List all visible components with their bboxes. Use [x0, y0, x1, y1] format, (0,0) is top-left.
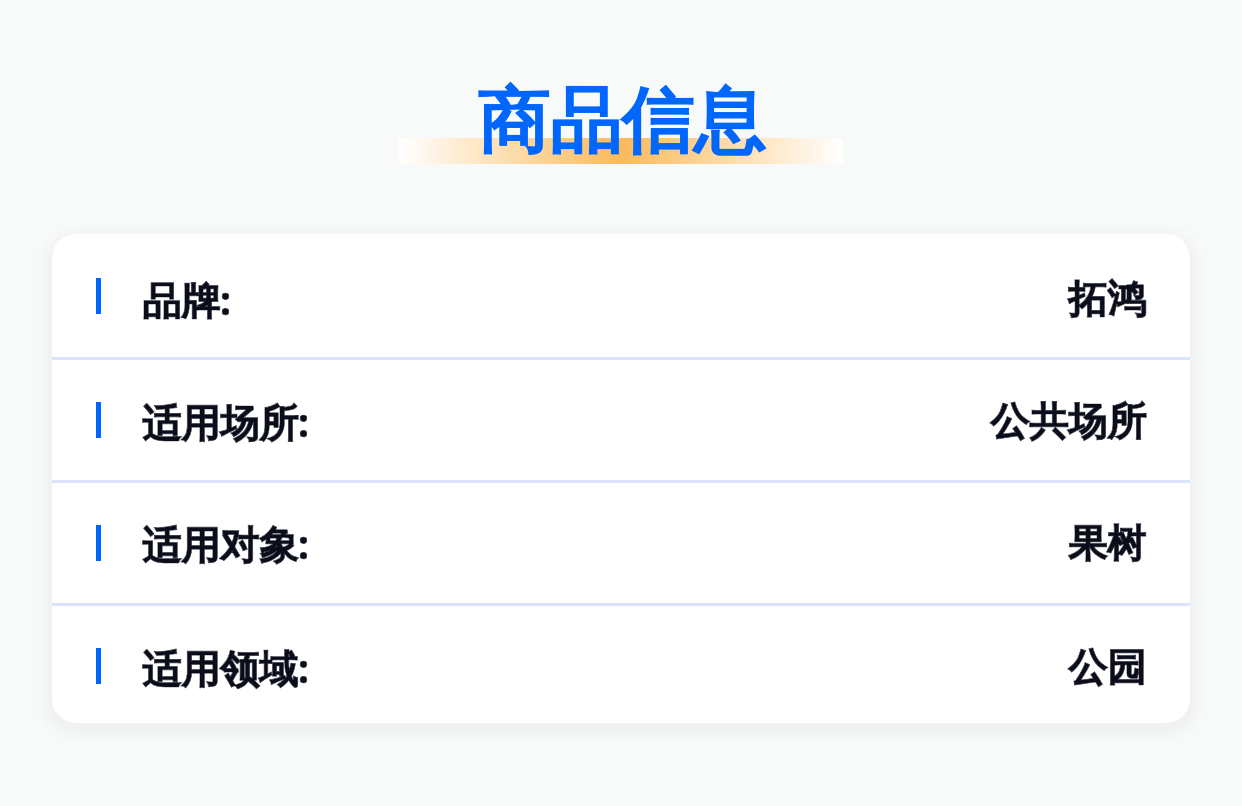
staticText: 适用领域: [142, 641, 309, 694]
staticText: 公共场所 [990, 397, 1146, 446]
staticText: 适用场所: [142, 395, 309, 448]
button[interactable]: 品牌: [52, 234, 1190, 357]
button[interactable]: 适用场所: [52, 360, 1190, 480]
staticText: 公共场所 [990, 397, 1146, 446]
button[interactable]: 适用对象: [52, 483, 1190, 603]
button[interactable]: 适用领域: [52, 606, 1190, 723]
staticText: 适用领域: [142, 641, 309, 694]
staticText: 品牌: [142, 273, 231, 326]
staticText: 拓鸿 [1068, 275, 1146, 324]
staticText: 果树 [1068, 519, 1146, 568]
staticText: 公园 [1068, 643, 1146, 692]
staticText: 品牌: [142, 273, 231, 326]
staticText: 适用对象: [142, 517, 309, 570]
staticText: 适用对象: [142, 517, 309, 570]
staticText: 商品信息 [477, 77, 765, 168]
staticText: 拓鸿 [1068, 275, 1146, 324]
staticText: 公园 [1068, 643, 1146, 692]
staticText: 果树 [1068, 519, 1146, 568]
staticText: 适用场所: [142, 395, 309, 448]
